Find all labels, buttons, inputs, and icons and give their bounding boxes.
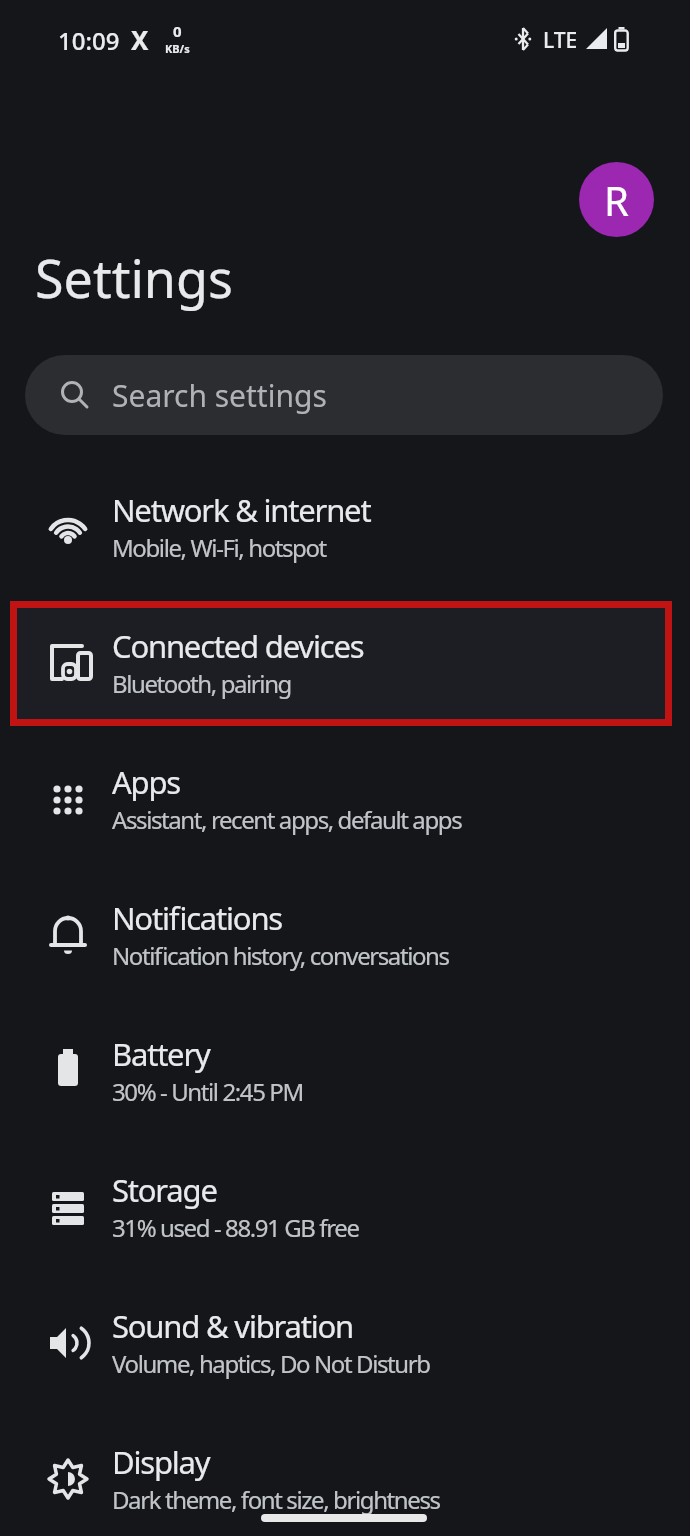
button[interactable]: Storage xyxy=(0,1139,690,1275)
staticText: Display xyxy=(112,1441,210,1483)
staticText: R xyxy=(604,173,629,227)
staticText: Storage xyxy=(112,1169,217,1211)
staticText: 31% used - 88.91 GB free xyxy=(112,1211,359,1244)
staticText: X xyxy=(131,22,149,57)
staticText: Connected devices xyxy=(112,625,364,667)
staticText: Dark theme, font size, brightness xyxy=(112,1483,440,1516)
staticText: Mobile, Wi-Fi, hotspot xyxy=(112,531,326,564)
staticText: Battery xyxy=(112,1033,210,1075)
staticText: Bluetooth, pairing xyxy=(112,667,291,700)
button[interactable]: Display xyxy=(0,1411,690,1536)
button[interactable]: Connected devices xyxy=(0,595,690,731)
staticText: Search settings xyxy=(112,375,327,416)
staticText: 0 xyxy=(173,21,182,41)
button[interactable]: Notifications xyxy=(0,867,690,1003)
staticText: Assistant, recent apps, default apps xyxy=(112,803,462,836)
staticText: Network & internet xyxy=(112,489,371,531)
button[interactable]: Battery xyxy=(0,1003,690,1139)
button[interactable]: Search settings xyxy=(25,355,663,435)
button[interactable]: Apps xyxy=(0,731,690,867)
staticText: 10:09 xyxy=(58,24,120,57)
staticText: 30% - Until 2:45 PM xyxy=(112,1075,303,1108)
staticText: Apps xyxy=(112,761,180,803)
staticText: KB/s xyxy=(165,41,190,56)
staticText: Notifications xyxy=(112,897,282,939)
staticText: Notification history, conversations xyxy=(112,939,449,972)
button[interactable]: Network & internet xyxy=(0,459,690,595)
staticText: Volume, haptics, Do Not Disturb xyxy=(112,1347,430,1380)
staticText: Settings xyxy=(35,242,233,313)
staticText: LTE xyxy=(543,26,578,55)
staticText: Sound & vibration xyxy=(112,1305,354,1347)
button[interactable]: Sound & vibration xyxy=(0,1275,690,1411)
button[interactable]: R xyxy=(579,162,654,237)
